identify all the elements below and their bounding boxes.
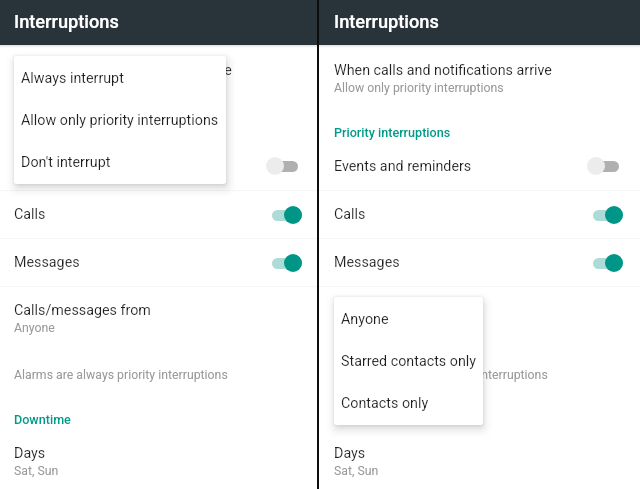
- button[interactable]: Days: [0, 445, 317, 478]
- button[interactable]: Events and reminders: [0, 142, 317, 190]
- staticText: Days: [334, 445, 366, 462]
- staticText: Anyone: [14, 321, 55, 335]
- staticText: Allow only priority interruptions: [21, 112, 219, 129]
- button[interactable]: Allow only priority interruptions: [14, 99, 226, 141]
- staticText: Calls: [14, 206, 46, 223]
- button[interactable]: Don't interrupt: [14, 141, 226, 183]
- staticText: Interruptions: [14, 11, 119, 32]
- staticText: When calls and notifications arrive: [14, 62, 232, 79]
- staticText: Sat, Sun: [334, 464, 379, 478]
- staticText: Events and reminders: [14, 158, 152, 175]
- button[interactable]: Starred contacts only: [334, 340, 483, 382]
- staticText: Interruptions: [334, 11, 439, 32]
- staticText: Downtime: [334, 412, 391, 427]
- staticText: Anyone: [334, 321, 375, 335]
- staticText: Alarms are always priority interruptions: [334, 368, 548, 382]
- button[interactable]: Calls/messages from: [0, 302, 317, 335]
- staticText: Events and reminders: [334, 158, 472, 175]
- staticText: Don't interrupt: [21, 154, 111, 171]
- button[interactable]: Anyone: [334, 298, 483, 340]
- button[interactable]: Calls/messages from: [319, 302, 640, 335]
- button[interactable]: Calls: [319, 191, 640, 238]
- staticText: Messages: [14, 254, 80, 271]
- button[interactable]: Contacts only: [334, 382, 483, 424]
- staticText: Messages: [334, 254, 400, 271]
- button[interactable]: When calls and notifications arrive: [319, 62, 640, 95]
- staticText: Calls/messages from: [334, 302, 471, 319]
- staticText: Priority interruptions: [334, 125, 451, 140]
- staticText: When calls and notifications arrive: [334, 62, 552, 79]
- staticText: Contacts only: [341, 395, 429, 412]
- staticText: Days: [14, 445, 46, 462]
- staticText: Sat, Sun: [14, 464, 59, 478]
- staticText: Priority interruptions: [14, 125, 131, 140]
- button[interactable]: Messages: [0, 239, 317, 286]
- button[interactable]: Events and reminders: [319, 142, 640, 190]
- button[interactable]: Calls: [0, 191, 317, 238]
- button[interactable]: When calls and notifications arrive: [0, 62, 317, 95]
- staticText: Calls/messages from: [14, 302, 151, 319]
- staticText: Always interrupt: [21, 70, 124, 87]
- button[interactable]: Always interrupt: [14, 57, 226, 99]
- staticText: Anyone: [341, 311, 389, 328]
- staticText: Starred contacts only: [341, 353, 477, 370]
- staticText: Downtime: [14, 412, 71, 427]
- staticText: Allow only priority interruptions: [334, 81, 504, 95]
- button[interactable]: Days: [319, 445, 640, 478]
- button[interactable]: Messages: [319, 239, 640, 286]
- staticText: Allow only priority interruptions: [14, 81, 184, 95]
- staticText: Calls: [334, 206, 366, 223]
- staticText: Alarms are always priority interruptions: [14, 368, 228, 382]
